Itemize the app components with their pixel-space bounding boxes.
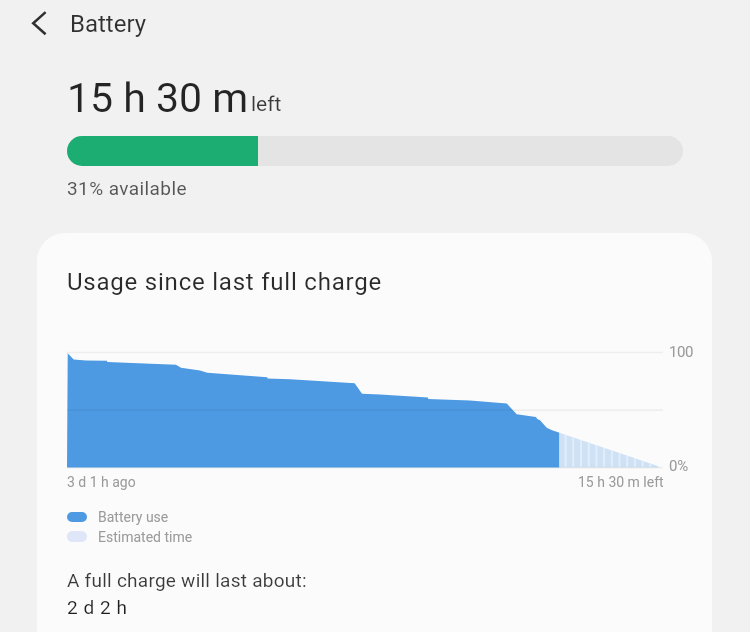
staticText: 2 d 2 h: [67, 596, 128, 618]
staticText: 31% available: [67, 177, 187, 199]
staticText: Estimated time: [98, 529, 193, 545]
staticText: 3 d 1 h ago: [67, 474, 136, 490]
staticText: 0%: [669, 457, 689, 475]
staticText: A full charge will last about:: [67, 569, 307, 591]
staticText: Usage since last full charge: [67, 268, 382, 296]
staticText: 15 h 30 m: [67, 74, 249, 122]
staticText: left: [251, 92, 282, 117]
staticText: Battery use: [98, 509, 169, 525]
button[interactable]: Navigate up: [16, 1, 62, 47]
staticText: Battery: [70, 10, 147, 38]
staticText: 15 h 30 m left: [578, 474, 664, 490]
staticText: 100: [669, 343, 694, 361]
